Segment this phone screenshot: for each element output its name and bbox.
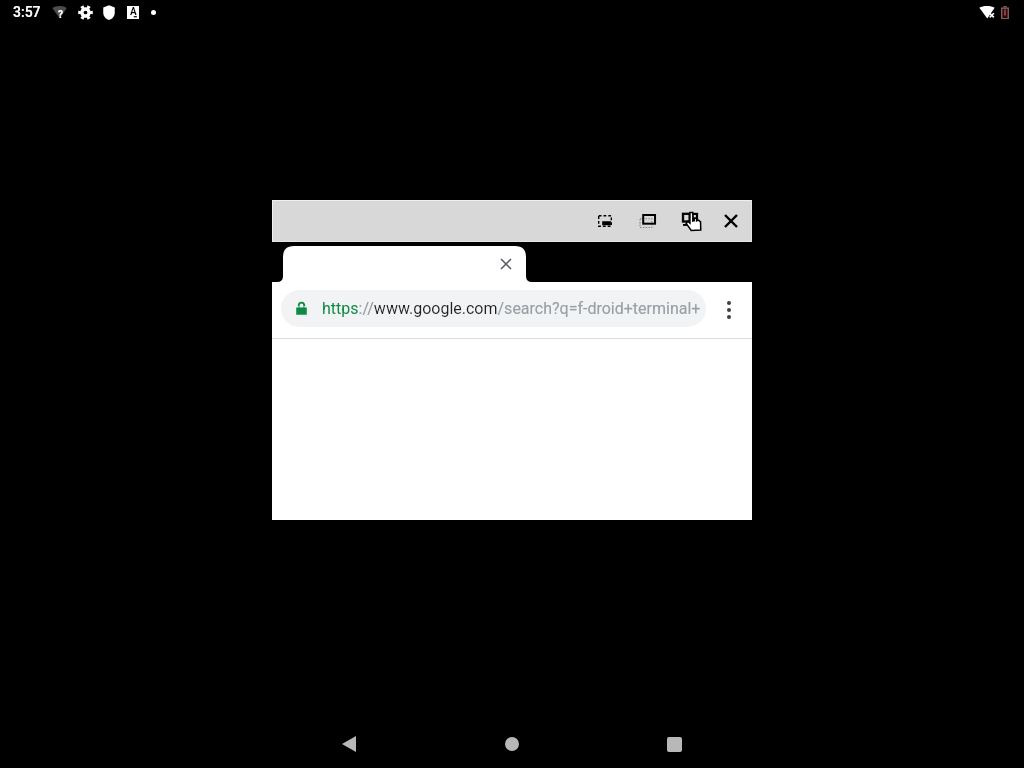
button[interactable]: Close tab: [493, 251, 519, 277]
button[interactable]: Maximize: [633, 206, 663, 236]
button[interactable]: Split screen: [678, 206, 708, 236]
staticText: A: [130, 6, 137, 18]
staticText: 3:57: [13, 4, 41, 20]
button[interactable]: Recent apps: [650, 720, 698, 768]
button[interactable]: https://www.google.com/search?q=f-droid+…: [281, 290, 706, 327]
button[interactable]: Back: [325, 720, 373, 768]
button[interactable]: Picture in picture: [590, 206, 620, 236]
staticText: ?: [58, 9, 63, 21]
staticText: https://www.google.com/search?q=f-droid+…: [322, 299, 701, 318]
button[interactable]: More options: [711, 292, 747, 328]
button[interactable]: Close window: [716, 206, 746, 236]
button[interactable]: Home: [488, 720, 536, 768]
